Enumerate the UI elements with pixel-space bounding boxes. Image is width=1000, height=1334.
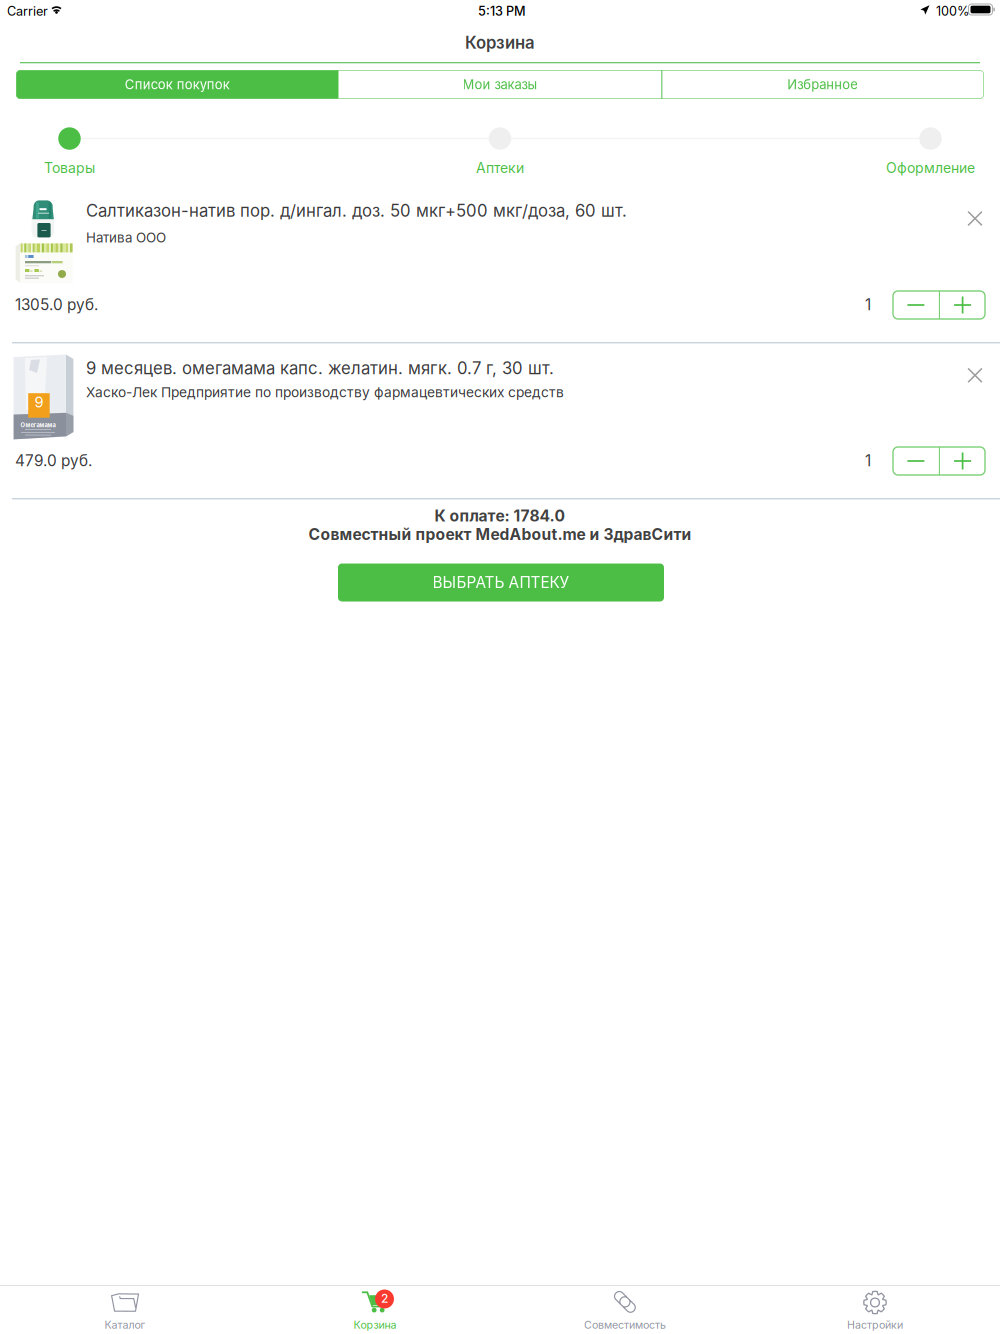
staticText: 1 (865, 295, 871, 314)
staticText: Совместный проект MedAbout.me и ЗдравСит… (308, 525, 691, 544)
button[interactable]: ВЫБРАТЬ АПТЕКУ (338, 563, 664, 601)
staticText: Совместимость (584, 1318, 666, 1331)
button[interactable]: Мои заказы (339, 70, 661, 99)
staticText: Хаско-Лек Предприятие по производству фа… (86, 384, 564, 401)
staticText: 1 (865, 451, 871, 470)
staticText: Мои заказы (462, 77, 537, 92)
button[interactable]: Избранное (661, 70, 984, 99)
button[interactable]: Удалить товар (953, 196, 997, 240)
staticText: Салтиказон-натив пор. д/ингал. доз. 50 м… (86, 200, 627, 221)
button[interactable]: Настройки (750, 1286, 1000, 1334)
staticText: 479.0 руб. (15, 451, 92, 470)
staticText: Товары (44, 159, 95, 176)
button[interactable]: Совместимость (500, 1286, 750, 1334)
staticText: 9 месяцев. омегамама капс. желатин. мягк… (86, 358, 554, 378)
staticText: Аптеки (476, 159, 524, 176)
staticText: К оплате: 1784.0 (434, 506, 565, 525)
button[interactable]: Уменьшить (893, 447, 939, 475)
button[interactable]: Список покупок (16, 70, 339, 99)
staticText: Оформление (886, 159, 975, 176)
staticText: 1305.0 руб. (15, 295, 98, 314)
button[interactable]: Удалить товар (953, 353, 997, 397)
staticText: 100% (936, 4, 969, 19)
staticText: ВЫБРАТЬ АПТЕКУ (432, 573, 569, 592)
staticText: Настройки (847, 1318, 903, 1331)
staticText: 5:13 PM (478, 4, 526, 19)
staticText: Список покупок (125, 77, 230, 92)
staticText: Корзина (353, 1318, 396, 1331)
staticText: Корзина (465, 33, 535, 53)
staticText: Натива ООО (86, 229, 166, 246)
button[interactable]: Увеличить (940, 291, 985, 319)
staticText: Каталог (104, 1318, 145, 1331)
button[interactable]: Каталог (0, 1286, 250, 1334)
button[interactable]: Уменьшить (893, 291, 939, 319)
button[interactable]: Корзина (250, 1286, 500, 1334)
staticText: Избранное (787, 77, 858, 92)
button[interactable]: Увеличить (940, 447, 985, 475)
staticText: Carrier (7, 4, 48, 19)
